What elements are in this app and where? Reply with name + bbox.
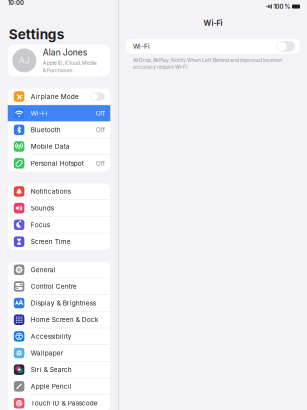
button[interactable]: Siri & Search — [8, 362, 110, 378]
staticText: Alan Jones — [43, 47, 88, 58]
button[interactable]: Home Screen & Dock — [8, 312, 110, 328]
staticText: Personal Hotspot — [31, 159, 84, 167]
button[interactable]: Control Centre — [8, 278, 110, 295]
staticText: Off — [96, 126, 105, 134]
button[interactable]: Bluetooth — [8, 122, 110, 138]
staticText: Off — [96, 109, 105, 117]
staticText: Settings — [9, 26, 65, 42]
staticText: Wi-Fi — [31, 109, 48, 117]
button[interactable]: Display & Brightness — [8, 295, 110, 312]
staticText: Wallpaper — [31, 349, 63, 357]
button[interactable]: Wi-Fi — [126, 39, 300, 54]
staticText: General — [31, 266, 56, 274]
staticText: Control Centre — [31, 282, 77, 290]
staticText: Display & Brightness — [31, 299, 96, 307]
button[interactable]: Sounds — [8, 200, 110, 217]
staticText: Screen Time — [31, 238, 71, 246]
staticText: Focus — [31, 221, 50, 229]
staticText: & Purchases — [43, 67, 73, 74]
staticText: AirDrop, AirPlay, Notify When Left Behin… — [133, 57, 282, 63]
staticText: Off — [96, 159, 105, 167]
button[interactable]: Touch ID & Passcode — [8, 395, 110, 410]
button[interactable]: Accessibility — [8, 328, 110, 345]
staticText: Touch ID & Passcode — [31, 399, 98, 407]
staticText: Wi-Fi — [203, 18, 222, 27]
button[interactable]: Screen Time — [8, 233, 110, 250]
staticText: accuracy require Wi-Fi. — [133, 64, 188, 70]
button[interactable]: AJ — [8, 44, 110, 76]
staticText: Home Screen & Dock — [31, 316, 99, 324]
staticText: Notifications — [31, 187, 71, 195]
staticText: Apple ID, iCloud, Media — [43, 60, 97, 66]
staticText: Siri & Search — [31, 366, 72, 374]
button[interactable]: Focus — [8, 217, 110, 233]
button[interactable]: Airplane Mode — [8, 88, 110, 105]
staticText: Wi-Fi — [133, 42, 150, 50]
button[interactable]: Apple Pencil — [8, 378, 110, 395]
button[interactable]: Wi-Fi — [8, 105, 110, 122]
staticText: 100 % — [273, 3, 290, 10]
staticText: Accessibility — [31, 332, 72, 340]
staticText: AJ — [19, 55, 30, 66]
staticText: Bluetooth — [31, 126, 61, 134]
staticText: Airplane Mode — [31, 93, 79, 100]
button[interactable]: General — [8, 262, 110, 278]
staticText: Sounds — [31, 204, 54, 212]
staticText: Apple Pencil — [31, 382, 72, 390]
button[interactable]: Notifications — [8, 183, 110, 200]
staticText: Mobile Data — [31, 142, 70, 150]
button[interactable]: Personal Hotspot — [8, 155, 110, 172]
button[interactable]: Wallpaper — [8, 345, 110, 361]
button[interactable]: Mobile Data — [8, 138, 110, 155]
staticText: 10:00 — [8, 0, 24, 6]
